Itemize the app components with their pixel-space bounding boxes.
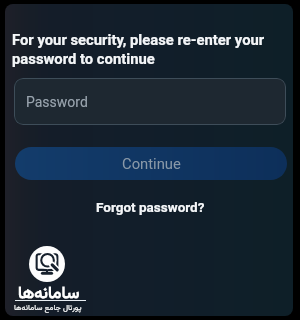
button[interactable]: Password xyxy=(14,78,286,125)
staticText: Continue xyxy=(122,155,181,172)
staticText: Password xyxy=(26,94,88,110)
staticText: پورتال جامع سامانه‌ها xyxy=(14,302,82,314)
button[interactable]: Forgot password? xyxy=(90,194,211,220)
staticText: For your security, please re-enter your … xyxy=(12,31,284,68)
button[interactable]: Continue xyxy=(15,147,287,180)
staticText: سامانه‌ها xyxy=(18,281,80,308)
staticText: Forgot password? xyxy=(96,199,205,215)
